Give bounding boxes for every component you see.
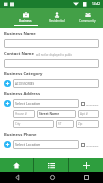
button[interactable]: Add [4, 80, 11, 87]
staticText: House # [15, 112, 27, 116]
staticText: Business Phone [4, 132, 37, 138]
staticText: Zip [78, 122, 83, 126]
button[interactable]: Street Name [37, 110, 76, 118]
button[interactable]: Select Location [13, 99, 79, 108]
staticText: Business [19, 19, 32, 23]
button[interactable] [81, 102, 85, 106]
button[interactable]: Back [0, 172, 35, 183]
button[interactable]: Home [35, 172, 69, 183]
staticText: Select Location [15, 101, 41, 106]
button[interactable] [81, 143, 85, 147]
button[interactable] [4, 39, 99, 48]
staticText: Immediate [86, 103, 99, 106]
staticText: ST [58, 122, 62, 126]
button[interactable]: Add [4, 141, 11, 148]
button[interactable] [4, 59, 99, 68]
staticText: Apt # [80, 112, 88, 116]
button[interactable]: Business [10, 8, 41, 28]
button[interactable]: Community [72, 8, 103, 28]
staticText: Residential [49, 19, 65, 23]
button[interactable]: Home [0, 158, 33, 172]
button[interactable]: Add [4, 100, 11, 107]
staticText: 14:42 [92, 2, 101, 6]
staticText: Street Name [39, 112, 60, 116]
staticText: Immediate [86, 144, 99, 147]
button[interactable]: City [13, 120, 54, 128]
staticText: City [15, 122, 21, 126]
button[interactable]: Apt # [78, 110, 99, 118]
button[interactable]: List [34, 158, 68, 172]
button[interactable]: Add [69, 158, 103, 172]
button[interactable]: Recents [69, 172, 103, 183]
staticText: Business Category [4, 71, 43, 77]
button[interactable]: ST [56, 120, 74, 128]
staticText: Community [79, 19, 96, 23]
button[interactable]: Zip [76, 120, 99, 128]
button[interactable]: ACCESSORIES [13, 79, 99, 88]
staticText: Business Address [4, 91, 41, 97]
staticText: Business Name [4, 31, 36, 37]
staticText: Select Location [15, 142, 41, 147]
button[interactable]: Select Location [13, 140, 79, 149]
staticText: Contact Name [4, 51, 34, 57]
button[interactable]: House # [13, 110, 35, 118]
button[interactable]: Residential [41, 8, 72, 28]
staticText: will not be displayed to public [36, 53, 73, 57]
staticText: ACCESSORIES [15, 82, 35, 86]
